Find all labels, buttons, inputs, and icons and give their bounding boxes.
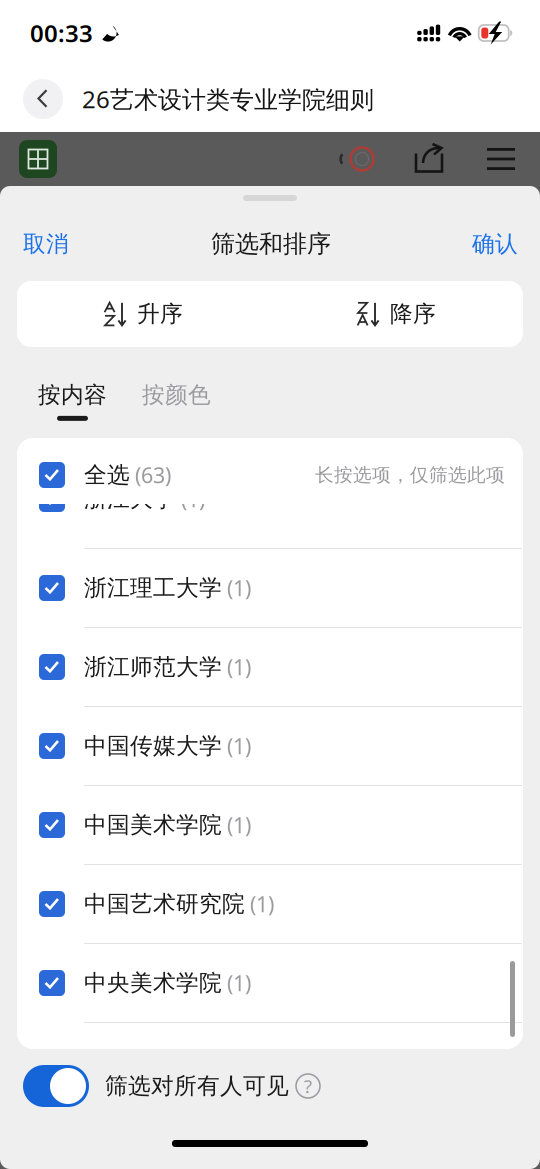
staticText: 取消 [23, 230, 69, 258]
staticText: 中国美术学院 [84, 811, 222, 839]
staticText: 升序 [137, 300, 183, 328]
staticText: 长按选项，仅筛选此项 [315, 463, 505, 486]
staticText: (1) [227, 969, 251, 997]
button[interactable]: 浙江师范大学 [17, 628, 523, 706]
staticText: 中央美术学院 [84, 969, 222, 997]
button[interactable]: 中国美术学院 [17, 786, 523, 864]
button[interactable]: 升序 [17, 281, 270, 347]
staticText: (1) [250, 890, 274, 918]
staticText: 中国艺术研究院 [84, 890, 245, 918]
staticText: (63) [135, 461, 171, 489]
staticText: 按内容 [38, 381, 107, 409]
button[interactable]: 浙江理工大学 [17, 549, 523, 627]
button[interactable]: 浙江大学 [17, 460, 523, 538]
staticText: 浙江理工大学 [84, 574, 222, 602]
button[interactable]: Toggle filter visibility [23, 1065, 89, 1107]
button[interactable]: Share [393, 132, 465, 186]
button[interactable]: Spreadsheet [5, 132, 71, 186]
staticText: 00:33 [30, 17, 93, 49]
button[interactable]: 按颜色 [142, 381, 211, 421]
staticText: (1) [181, 485, 205, 513]
button[interactable]: Back [11, 69, 75, 129]
staticText: 按颜色 [142, 381, 211, 409]
staticText: ? [304, 1074, 312, 1098]
button[interactable]: Record [321, 132, 393, 186]
staticText: 筛选对所有人可见 [105, 1072, 289, 1100]
staticText: (1) [227, 574, 251, 602]
staticText: 全选 [84, 461, 130, 489]
staticText: 确认 [472, 230, 518, 258]
button[interactable]: 降序 [270, 281, 523, 347]
staticText: (1) [227, 653, 251, 681]
staticText: 浙江大学 [84, 485, 176, 513]
button[interactable]: 全选 [17, 438, 523, 504]
button[interactable]: 中国传媒大学 [17, 707, 523, 785]
staticText: 26艺术设计类专业学院细则 [82, 83, 374, 115]
button[interactable]: 中国艺术研究院 [17, 865, 523, 943]
staticText: 浙江师范大学 [84, 653, 222, 681]
button[interactable]: 确认 [450, 216, 540, 272]
button[interactable]: Menu [465, 132, 537, 186]
staticText: (1) [227, 811, 251, 839]
staticText: 中国传媒大学 [84, 732, 222, 760]
button[interactable]: 中央美术学院 [17, 944, 523, 1022]
staticText: (1) [227, 732, 251, 760]
button[interactable]: Help [289, 1067, 327, 1105]
button[interactable]: 取消 [0, 216, 92, 272]
staticText: 降序 [390, 300, 436, 328]
button[interactable]: 按内容 [38, 381, 107, 421]
staticText: 筛选和排序 [211, 229, 331, 259]
